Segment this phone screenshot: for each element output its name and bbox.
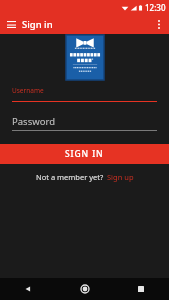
button[interactable]: Recent apps [131,279,151,299]
button[interactable]: Password [12,115,157,131]
button[interactable]: Sign up [107,172,134,182]
button[interactable]: Home [75,279,95,299]
staticText: Username [12,86,44,95]
staticText: Password [12,115,55,128]
button[interactable]: SIGN IN [0,144,169,164]
button[interactable]: Open navigation menu [4,17,18,31]
staticText: 12:30 [145,2,166,13]
button[interactable]: Username [12,86,157,102]
staticText: Sign in [22,18,53,31]
staticText: Sign up [107,172,134,182]
staticText: Not a member yet? [36,172,104,182]
staticText: SIGN IN [65,148,104,160]
button[interactable]: Back [18,279,38,299]
button[interactable]: More options [152,17,166,31]
